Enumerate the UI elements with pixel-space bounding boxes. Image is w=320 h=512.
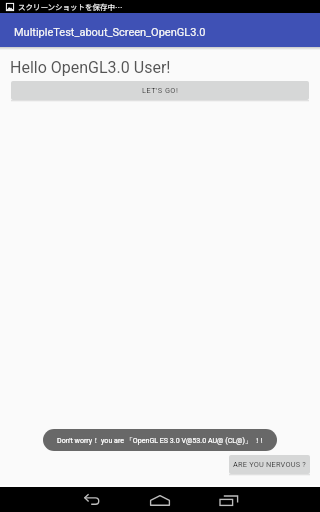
button[interactable]: Back — [68, 487, 116, 512]
staticText: Don't worry！ you are 「OpenGL ES 3.0 V@53… — [57, 436, 263, 445]
staticText: スクリーンショットを保存中… — [18, 1, 123, 12]
button[interactable]: ARE YOU NERVOUS ? — [229, 455, 310, 474]
button[interactable]: Recents — [205, 487, 253, 512]
staticText: ARE YOU NERVOUS ? — [233, 460, 307, 469]
button[interactable]: Home — [136, 487, 184, 512]
button[interactable]: MultipleTest_about_Screen_OpenGL3.0 — [0, 13, 320, 47]
staticText: MultipleTest_about_Screen_OpenGL3.0 — [14, 26, 206, 39]
staticText: LET'S GO! — [142, 86, 179, 95]
staticText: Hello OpenGL3.0 User! — [10, 58, 171, 77]
button[interactable]: LET'S GO! — [11, 81, 309, 100]
